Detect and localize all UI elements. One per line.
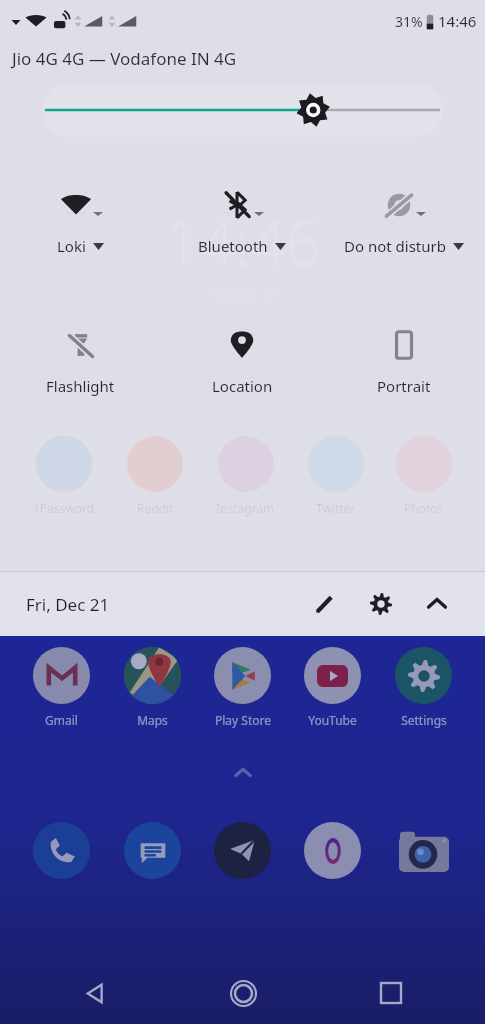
- staticText: Bluetooth: [198, 236, 268, 256]
- button[interactable]: Bluetooth: [161, 182, 323, 262]
- staticText: Location: [212, 376, 273, 396]
- button[interactable]: Collapse: [415, 582, 459, 626]
- staticText: Flashlight: [46, 376, 115, 396]
- button[interactable]: Maps: [124, 643, 181, 732]
- staticText: Reddit: [137, 500, 174, 516]
- button[interactable]: Portrait: [323, 322, 485, 402]
- button[interactable]: Edit: [303, 582, 347, 626]
- button[interactable]: Settings: [395, 643, 452, 732]
- staticText: Jio 4G 4G — Vodafone IN 4G: [12, 47, 237, 70]
- button[interactable]: Messages: [124, 822, 181, 879]
- button[interactable]: Opera: [304, 822, 361, 879]
- button[interactable]: Location: [161, 322, 323, 402]
- staticText: YouTube: [308, 712, 357, 728]
- button[interactable]: Gmail: [33, 643, 90, 732]
- button[interactable]: Loki: [0, 182, 161, 262]
- button[interactable]: Telegram: [214, 822, 271, 879]
- button[interactable]: Play Store: [214, 643, 271, 732]
- staticText: Twitter: [316, 500, 356, 516]
- button[interactable]: Settings: [359, 582, 403, 626]
- staticText: Gmail: [45, 712, 78, 728]
- staticText: Play Store: [215, 712, 271, 728]
- staticText: Loki: [57, 236, 86, 256]
- staticText: 14:46: [438, 11, 477, 31]
- button[interactable]: Recents: [367, 969, 415, 1017]
- staticText: Maps: [137, 712, 168, 728]
- staticText: Do not disturb: [344, 236, 446, 256]
- staticText: Instagram: [216, 500, 275, 516]
- button[interactable]: Back: [70, 969, 118, 1017]
- staticText: Settings: [401, 712, 447, 728]
- staticText: 31%: [395, 12, 423, 31]
- staticText: Portrait: [377, 376, 431, 396]
- button[interactable]: Brightness: [46, 90, 439, 130]
- button[interactable]: Flashlight: [0, 322, 161, 402]
- button[interactable]: Do not disturb: [323, 182, 485, 262]
- staticText: 14:46: [164, 200, 321, 284]
- button[interactable]: Camera: [395, 822, 452, 879]
- staticText: Fri, Dec 21: [26, 593, 110, 616]
- button[interactable]: Phone: [33, 822, 90, 879]
- staticText: Photos: [404, 500, 444, 516]
- button[interactable]: YouTube: [304, 643, 361, 732]
- staticText: 1Password: [33, 500, 95, 516]
- button[interactable]: Home: [219, 969, 267, 1017]
